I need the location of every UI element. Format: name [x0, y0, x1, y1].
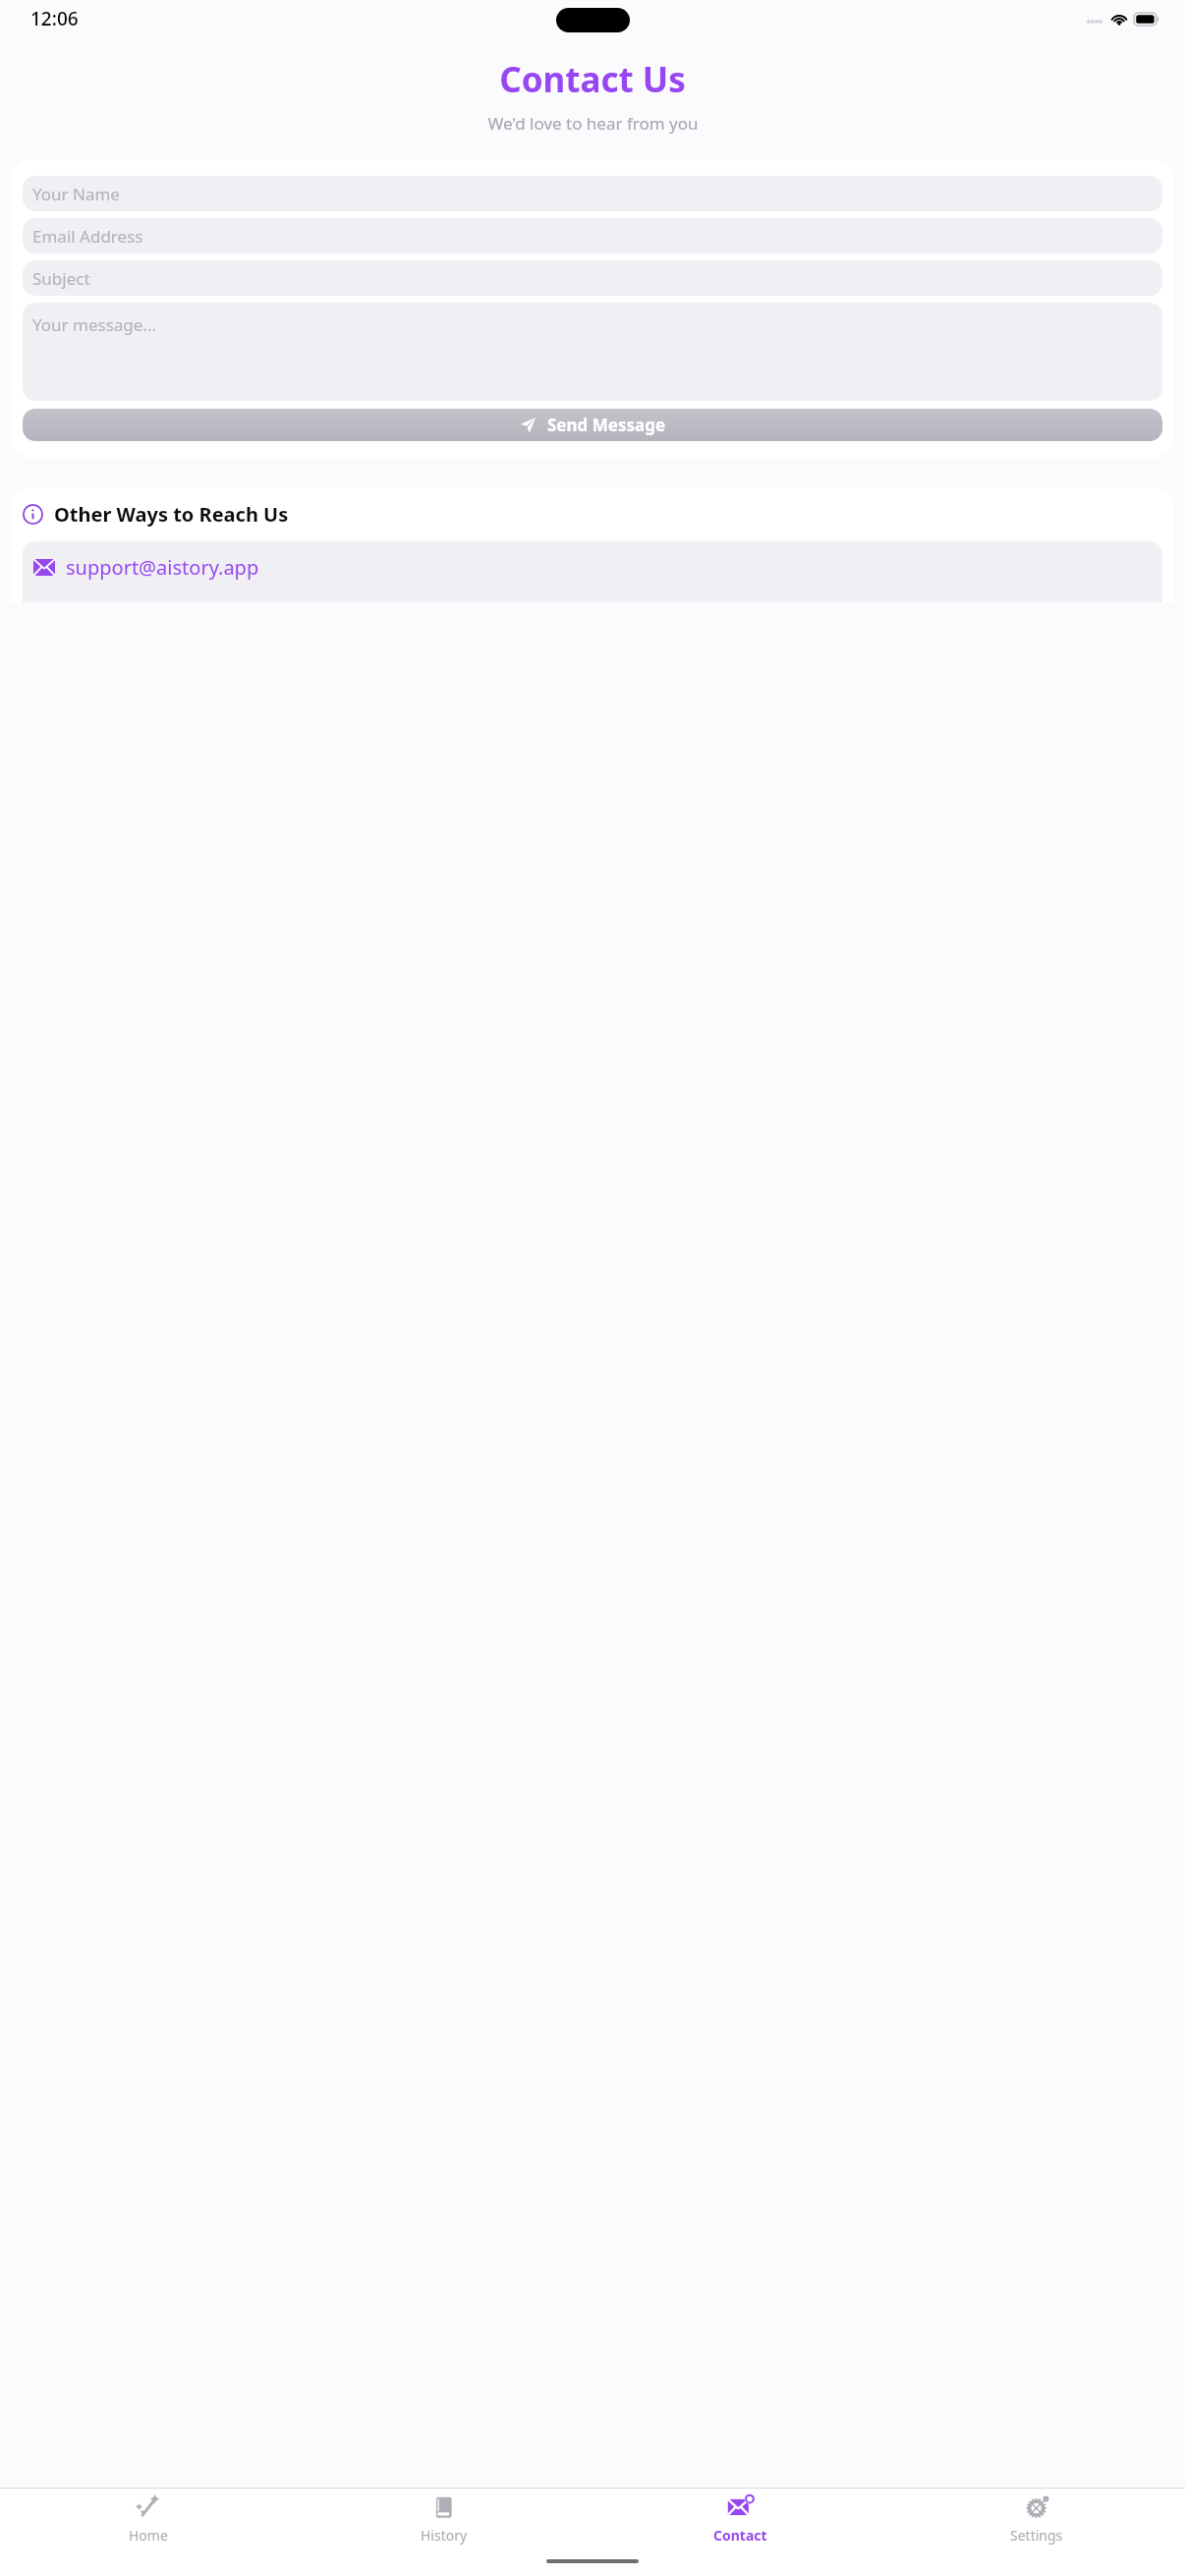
button[interactable]: Subject [23, 260, 1162, 296]
staticText: Contact [713, 2526, 767, 2545]
button[interactable]: History [296, 2489, 592, 2550]
staticText: Home [129, 2526, 168, 2545]
button[interactable]: Contact [592, 2489, 888, 2550]
button[interactable]: Email Address [23, 218, 1162, 253]
staticText: We'd love to hear from you [487, 112, 699, 135]
button[interactable]: support@aistory.app [23, 541, 1162, 602]
staticText: Email Address [32, 225, 143, 248]
staticText: Subject [32, 267, 90, 290]
button[interactable]: Your message... [23, 303, 1162, 401]
staticText: support@aistory.app [66, 554, 259, 581]
staticText: Contact Us [499, 56, 686, 103]
button[interactable]: Send Message [23, 409, 1162, 441]
staticText: Settings [1010, 2526, 1063, 2545]
button[interactable]: Your Name [23, 176, 1162, 211]
staticText: History [421, 2526, 468, 2545]
button[interactable]: Settings [888, 2489, 1185, 2550]
staticText: 12:06 [30, 6, 79, 31]
staticText: Other Ways to Reach Us [54, 501, 289, 528]
staticText: Send Message [547, 414, 666, 436]
button[interactable]: Home [0, 2489, 296, 2550]
staticText: Your message... [32, 313, 157, 336]
staticText: Your Name [32, 183, 120, 205]
